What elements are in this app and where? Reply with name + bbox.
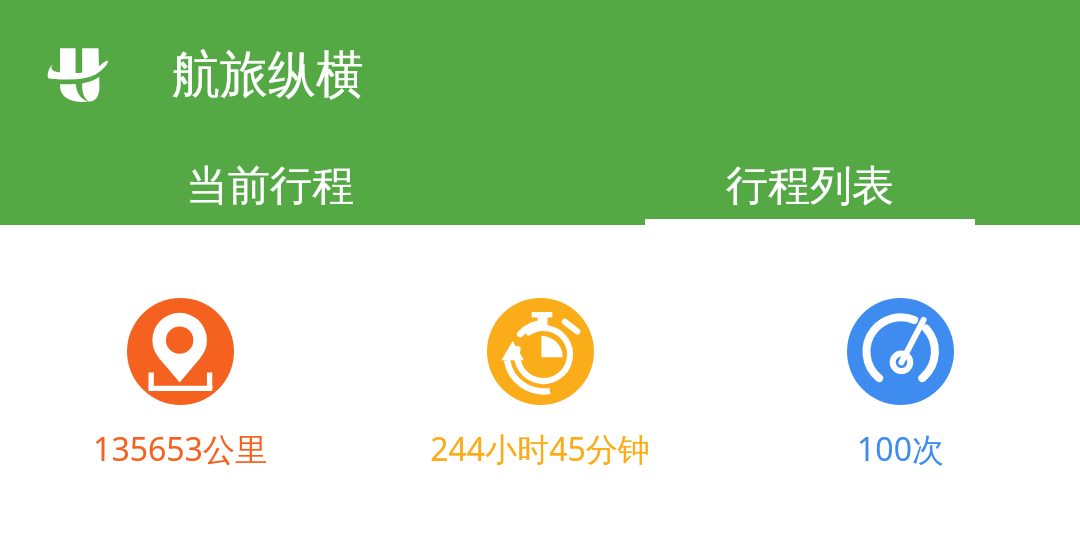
button[interactable]: 行程列表 <box>540 140 1080 225</box>
button[interactable]: 当前行程 <box>0 140 540 225</box>
button[interactable]: 航旅纵横 logo <box>47 48 109 104</box>
button[interactable]: 总里程 <box>0 298 360 471</box>
button[interactable]: 总次数 <box>720 298 1080 471</box>
staticText: 135653公里 <box>93 427 267 471</box>
staticText: 行程列表 <box>726 160 894 213</box>
staticText: 当前行程 <box>186 160 354 213</box>
staticText: 航旅纵横 <box>172 43 364 107</box>
staticText: 100次 <box>857 427 944 471</box>
staticText: 244小时45分钟 <box>430 427 650 471</box>
button[interactable]: 总时长 <box>360 298 720 471</box>
